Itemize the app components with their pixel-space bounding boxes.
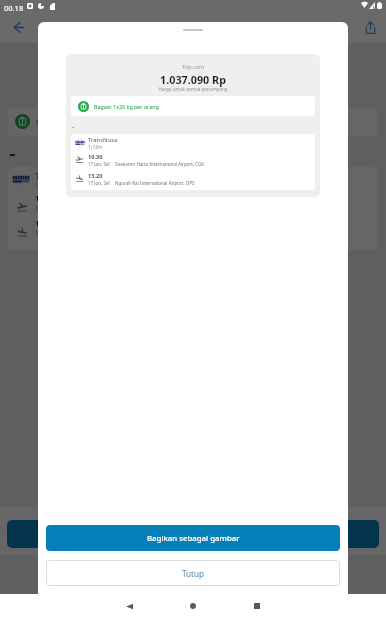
staticText: Bagasi: 1x20 kg per orang [36,117,124,127]
staticText: 17 Jun, Sel [88,180,110,186]
staticText: TransNusa [88,136,118,144]
staticText: - [72,122,75,132]
staticText: Bagasi: 1x20 kg per orang [94,103,159,110]
button[interactable]: Back [5,14,31,40]
button[interactable]: Recents [225,594,289,618]
staticText: 10.30 [88,153,103,161]
staticText: 10.30 [35,193,55,203]
staticText: Bagikan sebagai gambar [147,533,240,544]
staticText: Soekarno-Hatta International Airport, CG… [115,161,205,167]
staticText: 1j 50m [88,144,103,150]
staticText: 13.20 [88,172,103,180]
button[interactable]: Bagasi: 1x20 kg per orang [71,96,315,116]
button[interactable]: Home [161,594,225,618]
staticText: 1j 50m [35,181,55,189]
button[interactable]: Back [97,594,161,618]
staticText: TransNusa [35,171,75,182]
staticText: 00.18 [4,3,24,13]
button[interactable]: TransNusa [71,134,315,190]
staticText: Ngurah Rai International Airport, DPS [115,180,195,186]
staticText: 13.20 [35,218,55,228]
staticText: 17 Jun, Sel [35,204,65,212]
staticText: Trip.com [66,63,320,70]
staticText: 17 Jun, Sel [88,161,110,167]
button[interactable]: Bagikan sebagai gambar [46,525,340,551]
button[interactable]: Tutup [46,560,340,586]
staticText: 1.037.090 Rp [66,72,320,87]
staticText: Tutup [182,568,204,579]
staticText: 17 Jun, Sel [35,229,65,237]
button[interactable]: Share [357,14,383,40]
staticText: Harga untuk semua penumpang [66,86,320,92]
